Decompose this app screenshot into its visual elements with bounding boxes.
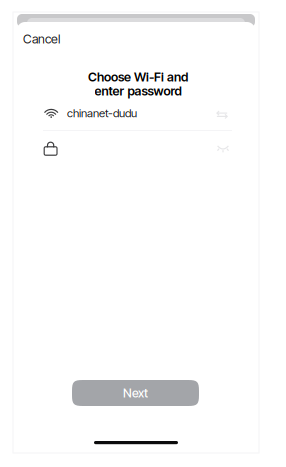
staticText: Next bbox=[123, 386, 148, 400]
staticText: chinanet-dudu bbox=[67, 106, 137, 120]
staticText: Choose Wi-Fi and bbox=[88, 69, 188, 85]
button[interactable]: Show password bbox=[212, 138, 234, 158]
staticText: Cancel bbox=[23, 31, 60, 47]
button[interactable]: Cancel bbox=[23, 29, 71, 49]
button[interactable]: Next bbox=[72, 380, 199, 406]
button[interactable]: Switch network bbox=[211, 105, 233, 125]
staticText: enter password bbox=[94, 83, 181, 99]
